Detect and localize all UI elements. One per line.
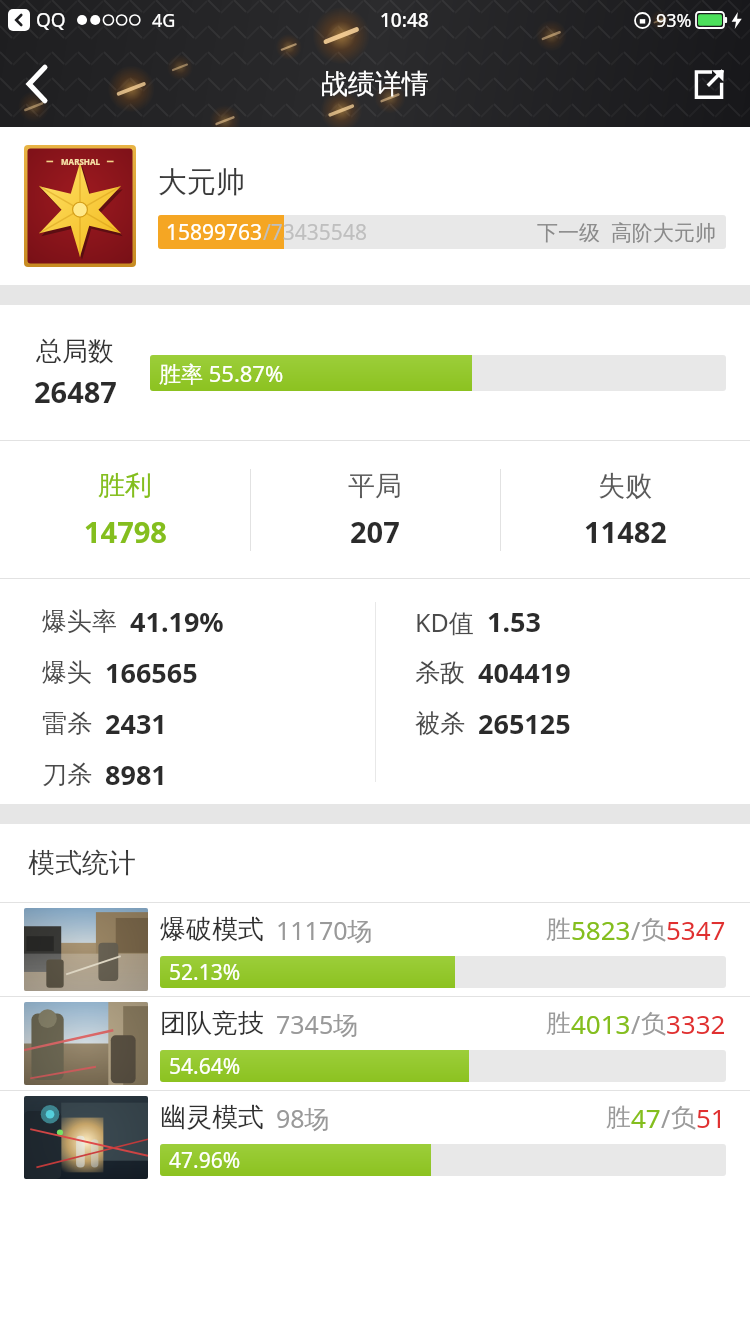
staticText: 负 <box>671 1102 696 1133</box>
staticText: 幽灵模式 <box>160 1101 264 1134</box>
button[interactable]: Back <box>8 55 66 113</box>
staticText: 雷杀 <box>42 708 92 739</box>
staticText: 7345场 <box>276 1007 359 1041</box>
staticText: /73435548 <box>263 218 367 247</box>
staticText: 1.53 <box>487 603 541 640</box>
staticText: 47.96% <box>169 1146 241 1175</box>
staticText: 胜 <box>546 1008 571 1039</box>
staticText: 胜 <box>546 914 571 945</box>
staticText: 负 <box>641 914 666 945</box>
staticText: 47 <box>631 1100 661 1135</box>
staticText: 胜利 <box>98 469 152 503</box>
button[interactable]: 团队竞技 <box>0 997 750 1090</box>
staticText: 2431 <box>105 705 167 742</box>
staticText: / <box>661 1101 671 1135</box>
staticText: 胜 <box>606 1102 631 1133</box>
staticText: 杀敌 <box>415 657 465 688</box>
staticText: 265125 <box>478 705 571 742</box>
staticText: 大元帅 <box>158 164 245 201</box>
staticText: / <box>631 913 641 947</box>
staticText: 爆头 <box>42 657 92 688</box>
staticText: 爆破模式 <box>160 913 264 946</box>
staticText: 54.64% <box>169 1052 241 1081</box>
staticText: 41.19% <box>130 603 224 640</box>
staticText: QQ <box>36 7 66 33</box>
staticText: 51 <box>696 1100 726 1135</box>
staticText: MARSHAL <box>61 156 100 167</box>
staticText: 下一级 高阶大元帅 <box>537 218 716 247</box>
staticText: 26487 <box>34 372 117 411</box>
staticText: 11170场 <box>276 913 373 947</box>
staticText: 模式统计 <box>28 846 136 880</box>
staticText: 52.13% <box>169 958 241 987</box>
button[interactable]: Share <box>680 55 738 113</box>
staticText: 刀杀 <box>42 759 92 790</box>
staticText: 3332 <box>666 1006 726 1041</box>
staticText: 平局 <box>348 469 402 503</box>
button[interactable]: MARSHAL <box>0 127 750 285</box>
staticText: 11482 <box>584 512 667 551</box>
staticText: 14798 <box>84 512 167 551</box>
staticText: 404419 <box>478 654 571 691</box>
staticText: 爆头率 <box>42 606 117 637</box>
staticText: 失败 <box>598 469 652 503</box>
staticText: 8981 <box>105 756 167 793</box>
staticText: 98场 <box>276 1101 330 1135</box>
staticText: 团队竞技 <box>160 1007 264 1040</box>
button[interactable]: 爆破模式 <box>0 903 750 996</box>
staticText: / <box>631 1007 641 1041</box>
staticText: 胜率 55.87% <box>159 358 284 388</box>
staticText: KD值 <box>415 605 474 639</box>
staticText: 10:48 <box>380 7 429 33</box>
staticText: 负 <box>641 1008 666 1039</box>
staticText: 93% <box>656 8 692 33</box>
button[interactable]: 幽灵模式 <box>0 1091 750 1184</box>
staticText: 总局数 <box>36 335 114 368</box>
staticText: 5823 <box>571 912 631 947</box>
staticText: 166565 <box>105 654 198 691</box>
staticText: 被杀 <box>415 708 465 739</box>
staticText: 207 <box>350 512 400 551</box>
staticText: 战绩详情 <box>321 67 429 101</box>
staticText: 4G <box>152 8 176 33</box>
staticText: 5347 <box>666 912 726 947</box>
staticText: 4013 <box>571 1006 631 1041</box>
staticText: 15899763 <box>166 218 263 247</box>
